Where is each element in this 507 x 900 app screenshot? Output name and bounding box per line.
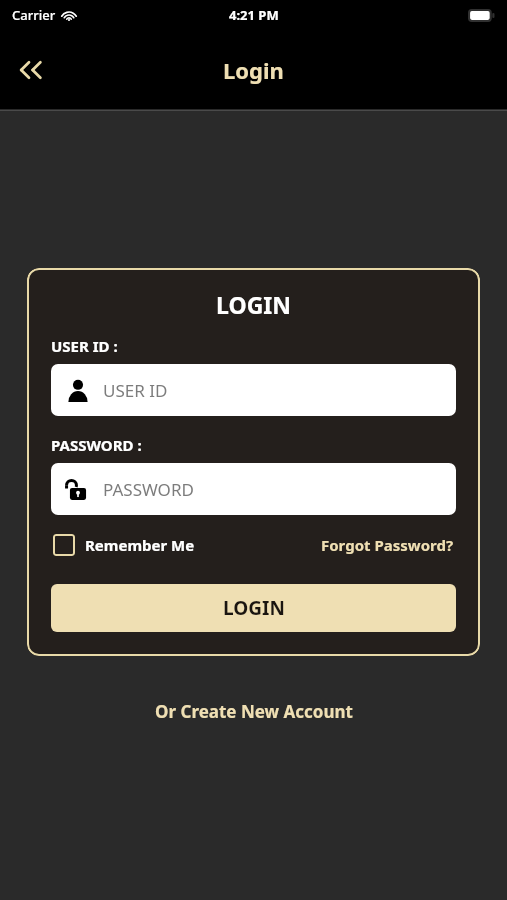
staticText: Remember Me <box>85 535 195 555</box>
button[interactable]: LOGIN <box>51 584 456 632</box>
button[interactable]: PASSWORD <box>51 463 456 515</box>
staticText: LOGIN <box>51 289 456 320</box>
staticText: Carrier <box>12 6 56 24</box>
staticText: PASSWORD : <box>51 435 142 455</box>
staticText: Or Create New Account <box>155 700 353 723</box>
button[interactable]: Remember Me <box>51 530 197 560</box>
button[interactable]: Or Create New Account <box>149 696 359 727</box>
staticText: PASSWORD <box>103 478 194 501</box>
staticText: USER ID : <box>51 336 118 356</box>
button[interactable]: Forgot Password? <box>319 531 456 559</box>
staticText: 4:21 PM <box>229 6 279 24</box>
button[interactable]: USER ID <box>51 364 456 416</box>
staticText: LOGIN <box>223 595 285 621</box>
button[interactable]: Back <box>8 46 56 94</box>
staticText: Forgot Password? <box>321 535 454 555</box>
staticText: USER ID <box>103 379 168 402</box>
staticText: Login <box>223 55 284 85</box>
